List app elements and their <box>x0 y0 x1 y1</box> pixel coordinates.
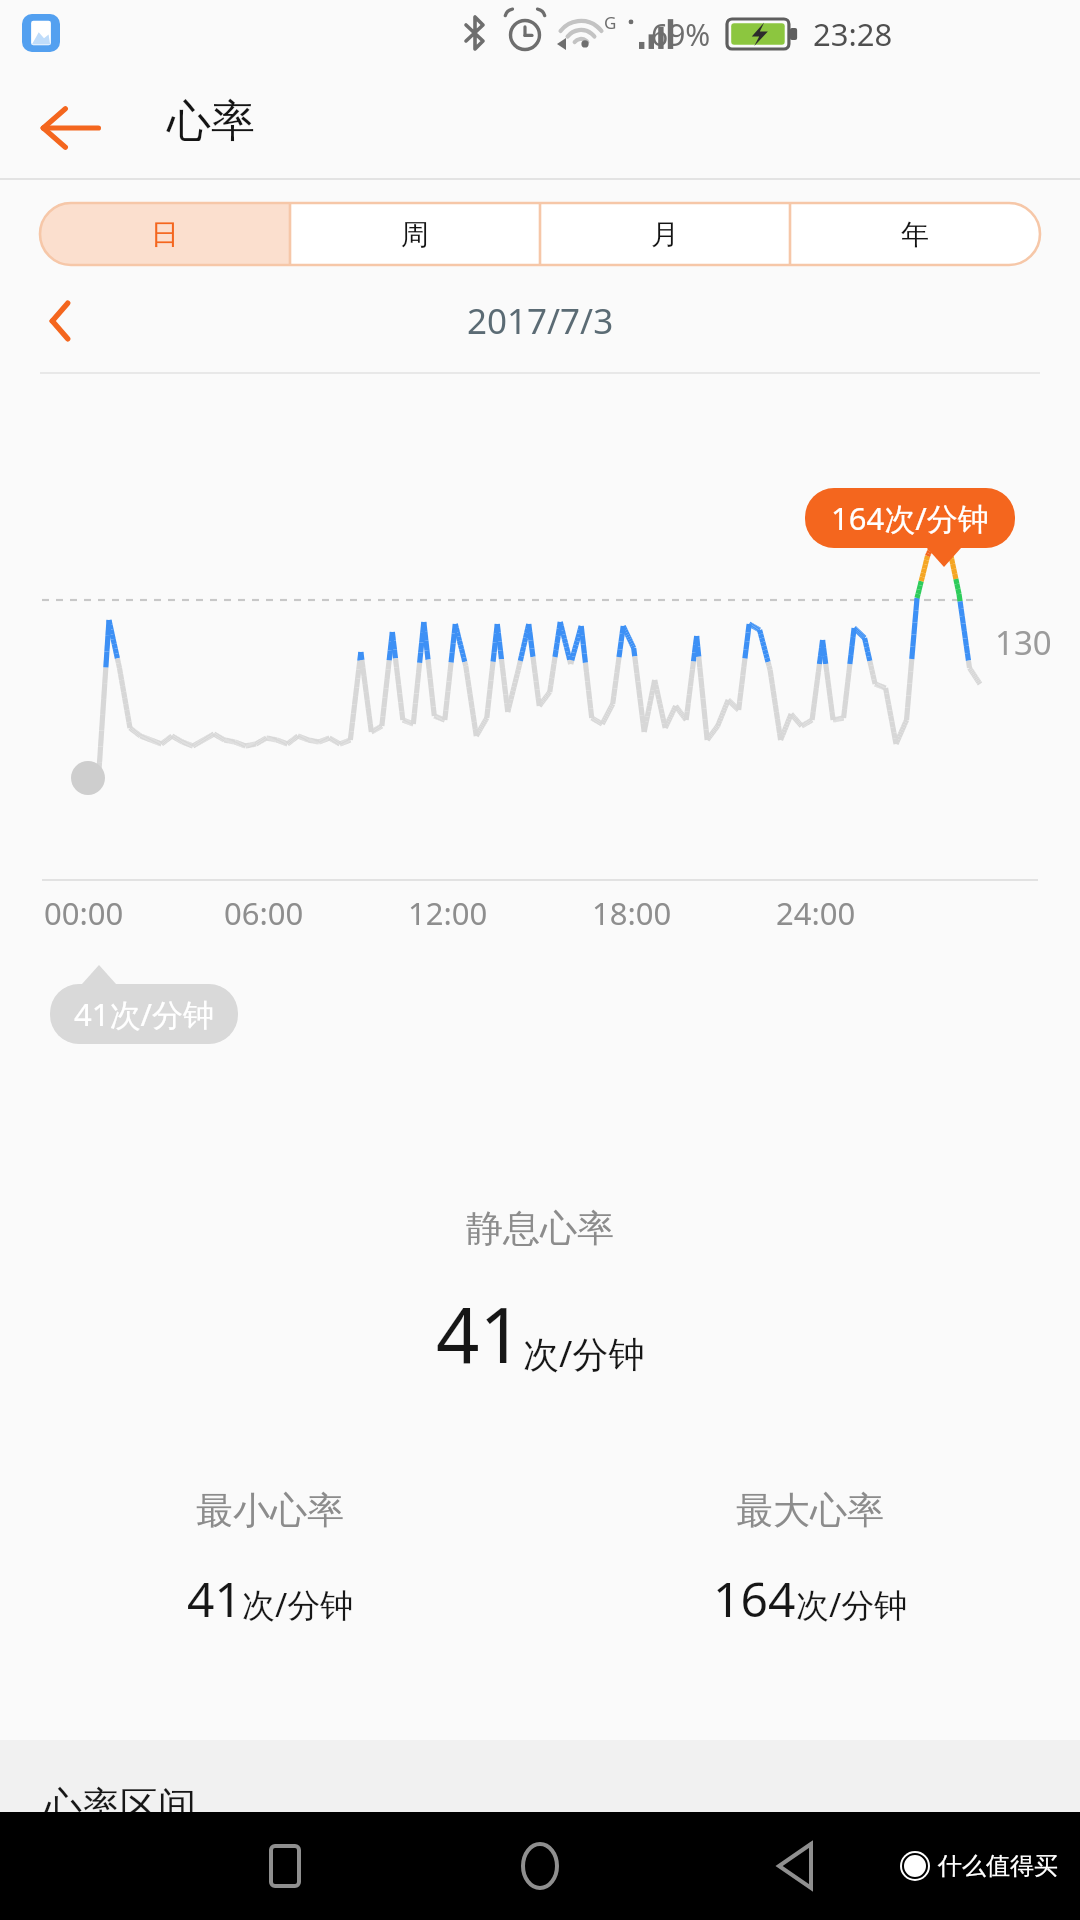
button[interactable]: 41次/分钟 <box>74 993 214 1035</box>
staticText: 日 <box>151 217 179 252</box>
staticText: 最小心率 <box>196 1487 344 1534</box>
staticText: 次/分钟 <box>796 1582 908 1627</box>
staticText: 164 <box>713 1566 796 1631</box>
staticText: 心率 <box>167 94 255 149</box>
button[interactable]: 心率区间 <box>0 1740 1080 1812</box>
staticText: 18:00 <box>592 892 672 934</box>
staticText: 周 <box>401 217 429 252</box>
button[interactable]: Home <box>485 1812 595 1920</box>
staticText: 41次/分钟 <box>74 993 214 1035</box>
staticText: 69% <box>651 14 711 55</box>
staticText: 年 <box>901 217 929 252</box>
button[interactable]: Previous day <box>22 288 98 354</box>
staticText: 最大心率 <box>736 1487 884 1534</box>
staticText: 164次/分钟 <box>831 497 989 539</box>
button[interactable]: 164次/分钟 <box>831 497 989 539</box>
button[interactable]: 月 <box>540 203 790 265</box>
staticText: G <box>604 11 617 34</box>
staticText: 次/分钟 <box>242 1582 354 1627</box>
button[interactable]: 最小心率 <box>0 1487 540 1631</box>
button[interactable]: Back <box>740 1812 850 1920</box>
staticText: 23:28 <box>813 13 893 55</box>
button[interactable]: 年 <box>790 203 1040 265</box>
staticText: 2017/7/3 <box>467 297 614 345</box>
button[interactable]: Recents <box>230 1812 340 1920</box>
button[interactable]: 周 <box>290 203 540 265</box>
staticText: 心率区间 <box>44 1782 196 1830</box>
staticText: 24:00 <box>776 892 856 934</box>
staticText: 月 <box>651 217 679 252</box>
staticText: 00:00 <box>44 892 124 934</box>
button[interactable]: 日 <box>40 203 290 265</box>
staticText: 130 <box>995 620 1052 665</box>
button[interactable]: Back <box>26 84 114 172</box>
staticText: 06:00 <box>224 892 304 934</box>
staticText: 12:00 <box>408 892 488 934</box>
staticText: 次/分钟 <box>523 1329 645 1378</box>
button[interactable]: 最大心率 <box>540 1487 1080 1631</box>
staticText: 什么值得买 <box>938 1851 1058 1881</box>
staticText: 41 <box>436 1282 523 1386</box>
staticText: 41 <box>187 1566 242 1631</box>
staticText: 静息心率 <box>466 1205 614 1252</box>
